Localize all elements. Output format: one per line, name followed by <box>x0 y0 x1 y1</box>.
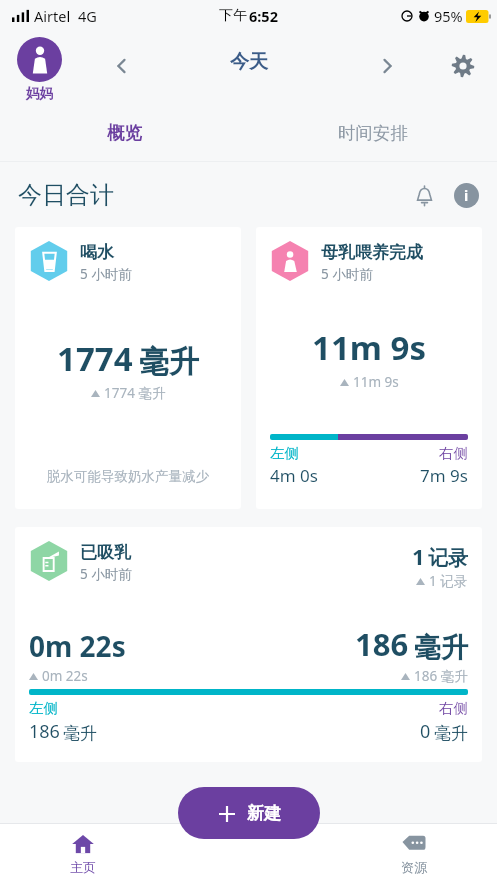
staticText: 左侧 <box>270 444 299 462</box>
staticText: 母乳喂养完成 <box>321 242 423 263</box>
staticText: 左侧 <box>29 699 58 717</box>
staticText: 1774 毫升 <box>104 384 166 402</box>
staticText: 11m 9s <box>312 325 426 370</box>
staticText: i <box>464 186 469 205</box>
button[interactable]: Notifications <box>406 177 442 213</box>
button[interactable]: Settings <box>443 46 483 86</box>
staticText: 毫升 <box>434 723 468 744</box>
staticText: 喝水 <box>80 242 114 263</box>
staticText: 毫升 <box>414 631 468 665</box>
button[interactable]: 喝水 <box>15 227 241 509</box>
staticText: 0 <box>420 719 431 744</box>
button[interactable]: 今天 <box>230 50 268 74</box>
staticText: 今日合计 <box>18 180 114 210</box>
button[interactable]: 主页 <box>0 824 165 883</box>
staticText: 186 <box>29 719 60 744</box>
staticText: 4m 0s <box>270 464 318 487</box>
staticText: 妈妈 <box>26 85 53 102</box>
button[interactable]: 妈妈 <box>17 37 62 102</box>
button[interactable]: Info <box>448 177 484 213</box>
staticText: 1 <box>412 541 425 571</box>
staticText: 186 <box>355 623 409 665</box>
staticText: 已吸乳 <box>80 542 131 563</box>
staticText: 7m 9s <box>420 464 468 487</box>
staticText: 下午 <box>219 7 247 25</box>
button[interactable]: 概览 <box>0 112 248 154</box>
staticText: 右侧 <box>439 699 468 717</box>
button[interactable]: 新建 <box>178 787 320 839</box>
staticText: 4G <box>78 6 97 26</box>
staticText: 记录 <box>428 546 468 571</box>
staticText: 6:52 <box>249 6 278 26</box>
staticText: 95% <box>434 6 463 26</box>
button[interactable]: 已吸乳 <box>15 527 482 762</box>
button[interactable]: 时间安排 <box>248 112 497 154</box>
staticText: 概览 <box>107 122 142 144</box>
staticText: 1 记录 <box>429 572 468 590</box>
staticText: 186 毫升 <box>414 667 468 685</box>
staticText: 5 小时前 <box>321 265 373 283</box>
staticText: 毫升 <box>63 723 97 744</box>
staticText: Airtel <box>34 6 71 26</box>
staticText: 5 小时前 <box>80 565 132 583</box>
staticText: 今天 <box>230 50 268 74</box>
staticText: 0m 22s <box>42 667 88 685</box>
button[interactable]: Next day <box>365 44 409 88</box>
staticText: 脱水可能导致奶水产量减少 <box>29 468 227 485</box>
button[interactable]: Previous day <box>100 44 144 88</box>
staticText: 时间安排 <box>338 122 408 144</box>
button[interactable]: 资源 <box>331 824 497 883</box>
staticText: 资源 <box>401 859 427 875</box>
staticText: 毫升 <box>139 343 199 381</box>
staticText: 11m 9s <box>353 373 399 391</box>
staticText: 主页 <box>70 859 96 875</box>
staticText: 右侧 <box>439 444 468 462</box>
staticText: 新建 <box>247 803 281 824</box>
staticText: 0m 22s <box>29 627 126 665</box>
button[interactable]: 母乳喂养完成 <box>256 227 482 509</box>
staticText: 5 小时前 <box>80 265 132 283</box>
staticText: 1774 <box>57 336 133 381</box>
